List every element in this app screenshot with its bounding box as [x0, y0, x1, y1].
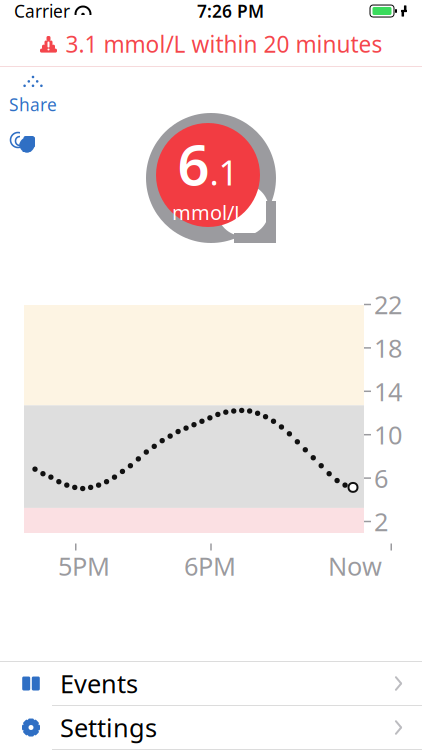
staticText: Carrier	[14, 0, 70, 22]
staticText: 14	[374, 374, 402, 408]
button[interactable]: Events	[0, 662, 422, 706]
staticText: 5PM	[58, 549, 110, 583]
staticText: 6	[177, 126, 209, 201]
button[interactable]: Settings	[0, 706, 422, 750]
staticText: 6PM	[184, 549, 236, 583]
staticText: Share	[9, 93, 57, 116]
staticText: 18	[374, 331, 402, 365]
staticText: 7:26 PM	[197, 0, 264, 22]
staticText: 6	[374, 461, 388, 495]
staticText: 22	[374, 288, 402, 321]
staticText: 2	[374, 505, 388, 538]
staticText: 3.1 mmol/L within 20 minutes	[65, 29, 382, 59]
button[interactable]: Announce reading	[6, 129, 42, 159]
staticText: Events	[60, 667, 138, 700]
staticText: mmol/L	[172, 199, 244, 225]
button[interactable]: Share	[6, 75, 60, 115]
staticText: Now	[328, 549, 382, 583]
staticText: 10	[374, 418, 402, 451]
staticText: Settings	[60, 711, 157, 744]
button[interactable]: 3.1 mmol/L within 20 minutes	[0, 22, 422, 67]
staticText: .1	[209, 149, 238, 195]
